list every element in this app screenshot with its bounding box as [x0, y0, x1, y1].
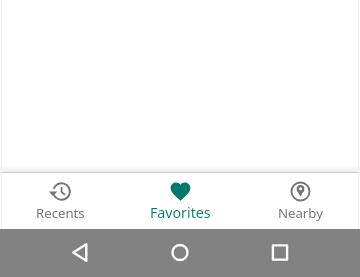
- staticText: Nearby: [278, 204, 323, 222]
- button[interactable]: [156, 229, 204, 277]
- button[interactable]: Nearby: [240, 173, 360, 229]
- staticText: Recents: [36, 204, 85, 222]
- button[interactable]: [56, 229, 104, 277]
- staticText: Favorites: [150, 203, 211, 222]
- button[interactable]: Recents: [0, 173, 120, 229]
- button[interactable]: [256, 229, 304, 277]
- button[interactable]: Favorites: [120, 173, 240, 229]
